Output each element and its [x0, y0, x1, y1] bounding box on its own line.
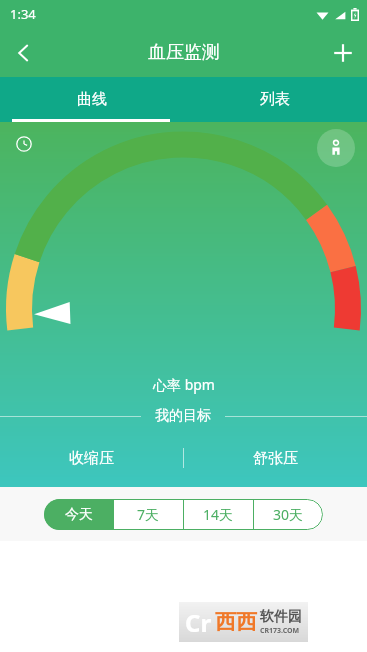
staticText: Cr: [185, 606, 212, 639]
staticText: 心率 bpm: [153, 375, 215, 394]
button[interactable]: 收缩压: [0, 441, 183, 475]
staticText: 列表: [260, 90, 290, 109]
staticText: 西西: [215, 609, 257, 635]
staticText: 舒张压: [253, 449, 298, 468]
staticText: 我的目标: [155, 407, 211, 425]
button[interactable]: 7天: [114, 499, 183, 530]
staticText: 曲线: [77, 90, 107, 109]
button[interactable]: 曲线: [0, 77, 183, 122]
button[interactable]: Add: [319, 29, 367, 77]
button[interactable]: History: [6, 126, 42, 162]
button[interactable]: 列表: [183, 77, 367, 122]
staticText: 软件园: [260, 608, 302, 626]
staticText: CR173.COM: [260, 626, 300, 636]
staticText: 7天: [137, 505, 160, 524]
staticText: 今天: [65, 506, 93, 524]
button[interactable]: Back: [0, 29, 48, 77]
button[interactable]: 舒张压: [184, 441, 367, 475]
staticText: 收缩压: [69, 449, 114, 468]
staticText: 30天: [273, 505, 304, 524]
staticText: 血压监测: [148, 41, 220, 64]
button[interactable]: Profile: [317, 129, 355, 167]
staticText: 1:34: [10, 5, 36, 23]
button[interactable]: 今天: [44, 499, 113, 530]
staticText: 14天: [203, 505, 234, 524]
button[interactable]: 14天: [184, 499, 253, 530]
button[interactable]: 30天: [254, 499, 323, 530]
